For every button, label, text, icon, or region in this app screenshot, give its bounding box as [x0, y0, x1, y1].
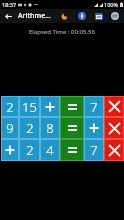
button[interactable]: 2: [20, 118, 39, 138]
staticText: 7: [90, 98, 98, 116]
button[interactable]: 7: [85, 140, 103, 160]
staticText: Arithme...: [18, 11, 51, 21]
button[interactable]: Equals: [61, 118, 83, 138]
button[interactable]: Delete: [105, 140, 123, 160]
button[interactable]: 7: [85, 97, 103, 116]
staticText: Elapsed Time : 00:05.56: [29, 28, 95, 36]
button[interactable]: Hint: [56, 9, 73, 23]
button[interactable]: Back: [0, 9, 16, 23]
button[interactable]: 2: [20, 140, 39, 160]
button[interactable]: 8: [41, 118, 59, 138]
button[interactable]: Delete: [105, 118, 123, 138]
staticText: 2: [6, 98, 14, 116]
button[interactable]: Equals: [61, 97, 83, 116]
staticText: 8: [46, 119, 54, 137]
button[interactable]: More: [107, 9, 123, 23]
button[interactable]: Plus: [85, 118, 103, 138]
staticText: 2: [26, 141, 34, 159]
button[interactable]: 2: [2, 97, 18, 116]
button[interactable]: Plus: [41, 97, 59, 116]
button[interactable]: Equals: [61, 140, 83, 160]
staticText: 7: [90, 141, 98, 159]
staticText: 100%: [104, 1, 119, 8]
button[interactable]: Settings: [73, 9, 90, 23]
staticText: 4: [46, 141, 54, 159]
staticText: 18:37: [2, 1, 17, 8]
button[interactable]: 15: [20, 97, 39, 116]
button[interactable]: Levels: [90, 9, 107, 23]
staticText: 2: [26, 119, 34, 137]
button[interactable]: 9: [2, 118, 18, 138]
staticText: 9: [6, 119, 14, 137]
staticText: 15: [22, 98, 37, 116]
button[interactable]: 4: [41, 140, 59, 160]
button[interactable]: Plus: [2, 140, 18, 160]
button[interactable]: Delete: [105, 97, 123, 116]
